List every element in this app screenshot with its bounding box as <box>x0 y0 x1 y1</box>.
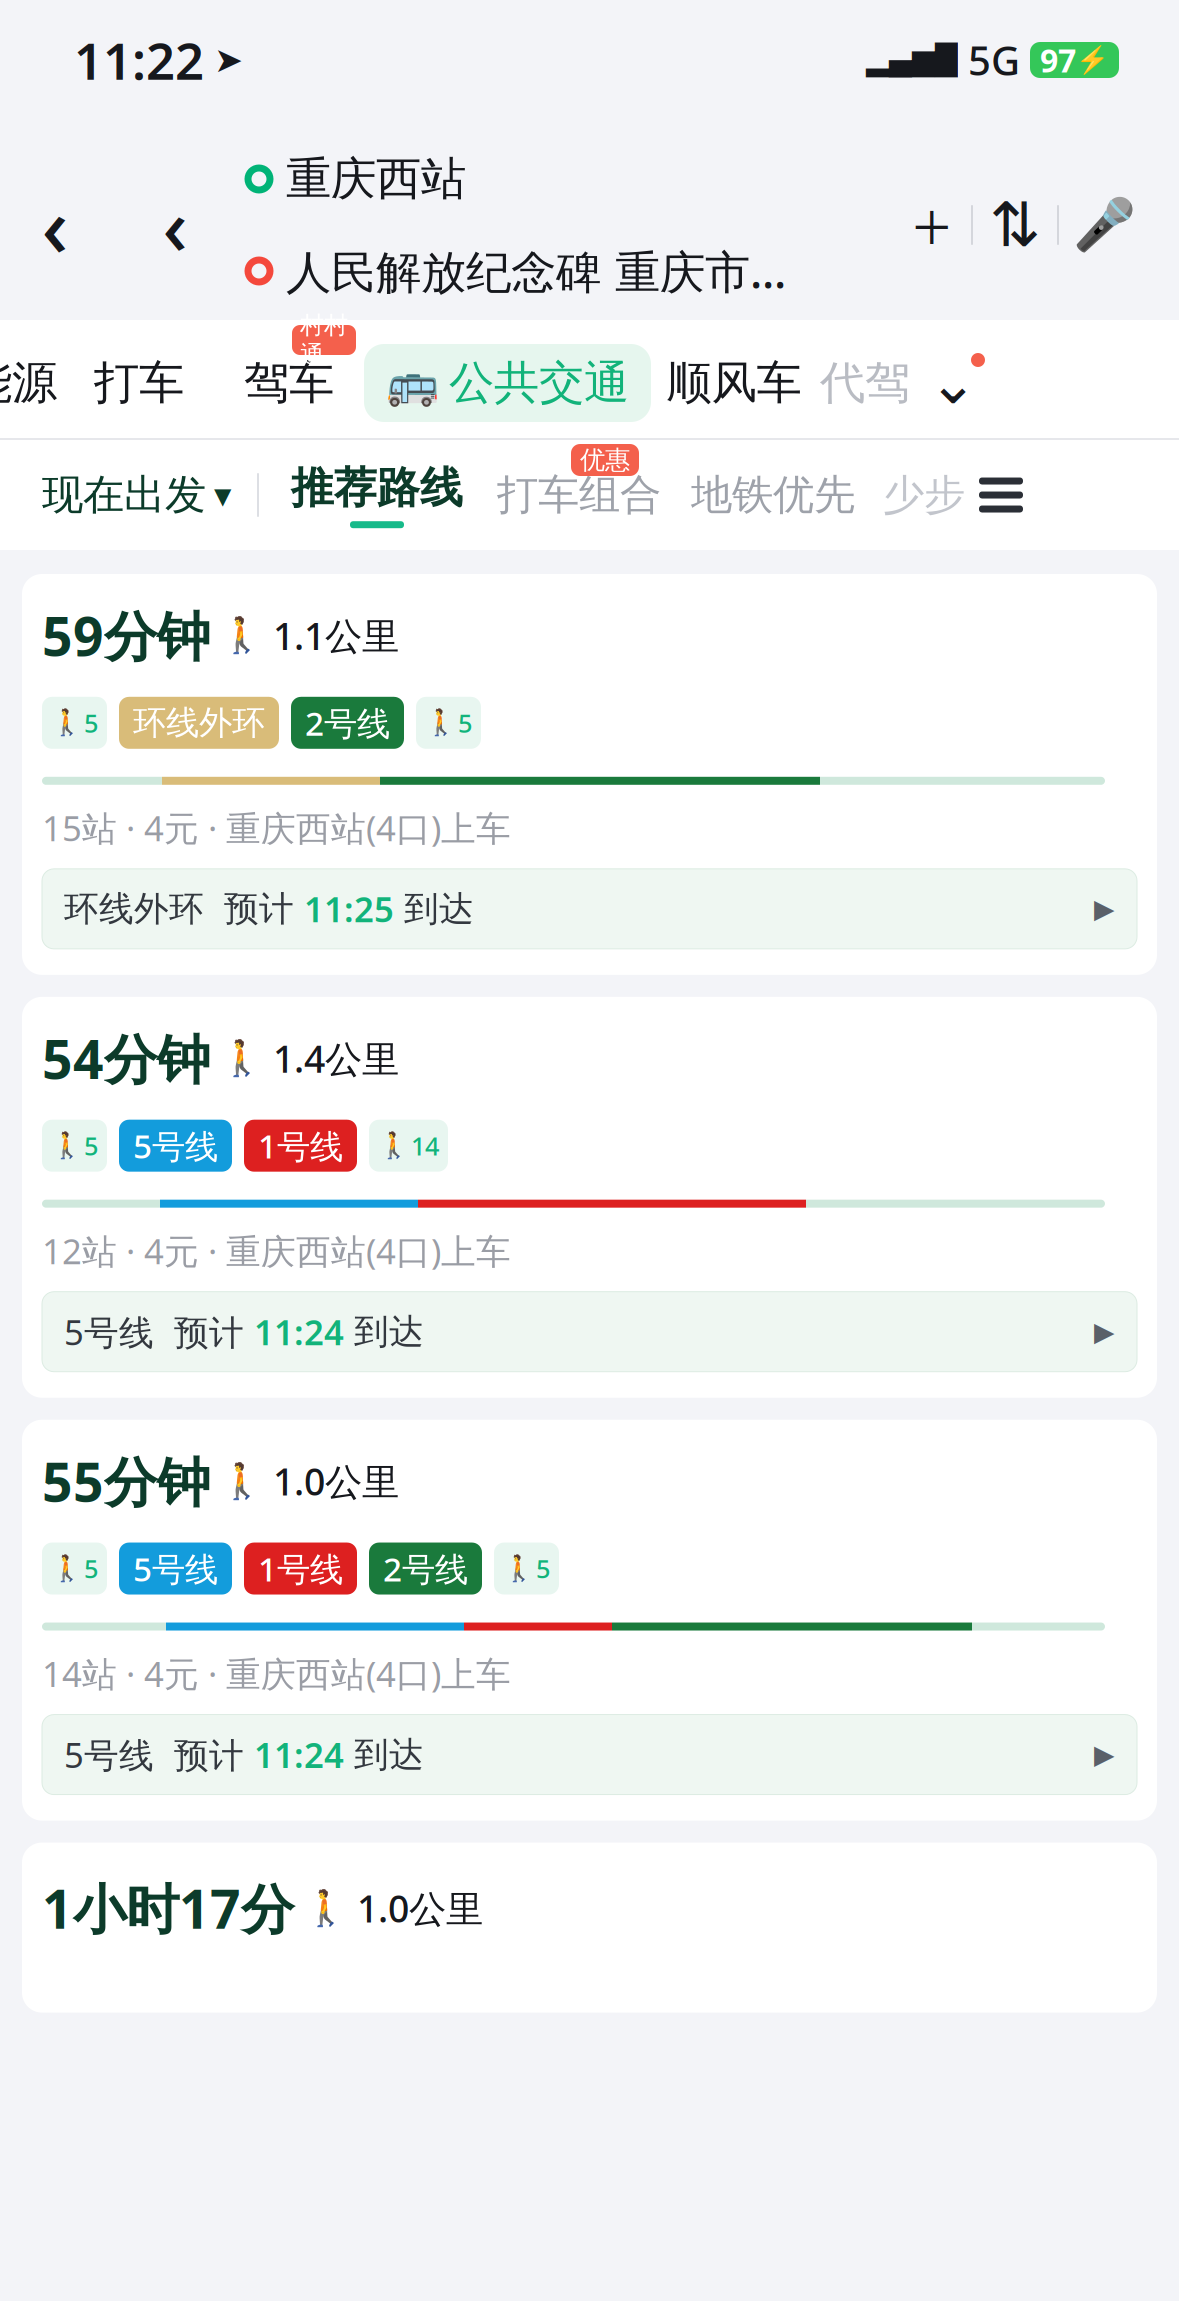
staticText: 优惠 <box>580 444 630 475</box>
staticText: ⌄ <box>928 350 977 416</box>
staticText: 打车 <box>94 355 184 411</box>
staticText: 🚶 <box>503 1554 535 1583</box>
staticText: 🚶 <box>51 1554 83 1583</box>
staticText: 环线外环 预计 <box>64 888 304 930</box>
button[interactable]: Back <box>0 130 110 320</box>
staticText: 地铁优先 <box>691 470 855 520</box>
button[interactable]: 能源 <box>0 343 64 423</box>
staticText: 🎤 <box>1072 196 1135 254</box>
staticText: 5号线 <box>133 1546 218 1591</box>
staticText: ⇅ <box>989 190 1040 260</box>
staticText: 97 <box>1040 39 1076 81</box>
staticText: ‹ <box>41 170 68 280</box>
staticText: 14 <box>411 1129 439 1162</box>
staticText: 代驾 <box>820 355 910 411</box>
button[interactable]: 55分钟 <box>22 1420 1157 1821</box>
staticText: ▶ <box>1094 894 1115 924</box>
staticText: + <box>912 179 952 271</box>
staticText: 🚶 <box>425 708 457 737</box>
staticText: 到达 <box>344 1733 424 1776</box>
staticText: 🚌 <box>386 359 439 407</box>
button[interactable]: 5号线 预计 <box>42 1292 1137 1372</box>
staticText: 🚶 <box>220 616 263 655</box>
button[interactable]: 少步 <box>855 440 965 550</box>
button[interactable]: 🚌 <box>364 344 651 422</box>
staticText: 🚶 <box>304 1888 347 1928</box>
staticText: 12站 · 4元 · 重庆西站(4口)上车 <box>42 1228 511 1274</box>
staticText: 1小时17分 <box>42 1873 294 1943</box>
staticText: 🚶 <box>220 1461 263 1501</box>
staticText: 5 <box>84 1129 98 1162</box>
staticText: 村村通 <box>300 310 348 369</box>
staticText: 11:24 <box>254 1732 344 1778</box>
staticText: 🚶 <box>51 708 83 737</box>
staticText: 11:24 <box>254 1309 344 1355</box>
staticText: ▂▄▆█ <box>866 43 958 77</box>
staticText: 推荐路线 <box>291 462 463 514</box>
staticText: 5号线 预计 <box>64 1309 254 1355</box>
staticText: 打车组合 <box>497 470 661 520</box>
staticText: 1号线 <box>258 1124 343 1168</box>
staticText: 5G <box>968 33 1020 86</box>
staticText: 5号线 预计 <box>64 1732 254 1778</box>
staticText: 1.0公里 <box>273 1456 399 1506</box>
staticText: 🚶 <box>51 1131 83 1160</box>
button[interactable]: 代驾 <box>817 343 913 423</box>
button[interactable]: 推荐路线 <box>259 440 463 550</box>
staticText: ▶ <box>1094 1317 1115 1347</box>
staticText: 59分钟 <box>42 600 210 671</box>
button[interactable]: 顺风车 <box>651 343 817 423</box>
staticText: ‹ <box>162 174 187 276</box>
button[interactable]: 地铁优先 <box>661 440 855 550</box>
staticText: 少步 <box>883 470 965 520</box>
staticText: ▾ <box>214 475 231 515</box>
button[interactable]: 59分钟 <box>22 574 1157 975</box>
staticText: 驾车 <box>244 355 334 411</box>
staticText: 55分钟 <box>42 1446 210 1516</box>
staticText: 5 <box>84 1552 98 1585</box>
staticText: 1.1公里 <box>273 611 399 660</box>
staticText: ⚡ <box>1076 45 1109 75</box>
button[interactable]: Swap origin and destination <box>973 175 1057 275</box>
staticText: 能源 <box>0 355 57 411</box>
button[interactable]: 打车组合 <box>463 440 661 550</box>
staticText: 2号线 <box>305 701 390 745</box>
staticText: 5号线 <box>133 1124 218 1168</box>
button[interactable]: 驾车 <box>214 343 364 423</box>
button[interactable]: More modes <box>913 343 993 423</box>
staticText: 11:22 <box>74 26 204 94</box>
staticText: 到达 <box>344 1310 424 1353</box>
staticText: 15站 · 4元 · 重庆西站(4口)上车 <box>42 805 511 851</box>
staticText: 重庆西站 <box>286 151 466 207</box>
button[interactable]: Filter options <box>965 440 1045 550</box>
button[interactable]: 5号线 预计 <box>42 1715 1137 1795</box>
button[interactable]: 1小时17分 <box>22 1843 1157 2013</box>
staticText: 到达 <box>394 888 474 930</box>
staticText: 2号线 <box>383 1546 468 1591</box>
staticText: 人民解放纪念碑 重庆市... <box>286 241 786 301</box>
staticText: 现在出发 <box>42 470 206 520</box>
staticText: 11:25 <box>304 886 394 932</box>
button[interactable]: 54分钟 <box>22 997 1157 1398</box>
button[interactable]: Back <box>130 165 220 285</box>
staticText: 顺风车 <box>666 355 801 411</box>
staticText: 5 <box>458 706 472 740</box>
staticText: 1.0公里 <box>357 1883 483 1933</box>
staticText: 5 <box>84 706 98 740</box>
staticText: 1.4公里 <box>273 1033 399 1083</box>
staticText: 14站 · 4元 · 重庆西站(4口)上车 <box>42 1650 511 1696</box>
staticText: 🚶 <box>220 1038 263 1078</box>
button[interactable]: Voice search <box>1059 175 1149 275</box>
staticText: 公共交通 <box>449 355 629 411</box>
staticText: 1号线 <box>258 1546 343 1591</box>
staticText: 5 <box>536 1552 550 1585</box>
button[interactable]: 现在出发 <box>0 440 231 550</box>
button[interactable]: 环线外环 预计 <box>42 869 1137 949</box>
staticText: 🚶 <box>378 1131 410 1160</box>
staticText: 54分钟 <box>42 1023 210 1094</box>
staticText: ➤ <box>214 40 243 80</box>
button[interactable]: Add stop <box>893 175 971 275</box>
staticText: ▶ <box>1094 1739 1115 1770</box>
staticText: 环线外环 <box>133 702 265 743</box>
button[interactable]: 打车 <box>64 343 214 423</box>
